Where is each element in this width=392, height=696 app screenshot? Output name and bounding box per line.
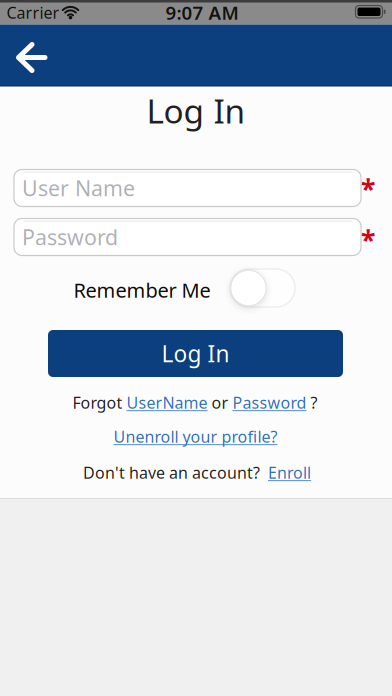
button[interactable]	[230, 269, 295, 307]
staticText: Log In	[146, 88, 245, 133]
staticText: UserName	[126, 392, 207, 413]
button[interactable]: User Name	[14, 169, 361, 206]
staticText: Unenroll your profile?	[113, 426, 277, 447]
staticText: Password	[22, 223, 118, 251]
button[interactable]: Password	[232, 392, 306, 413]
staticText: Remember Me	[73, 277, 210, 303]
staticText: *	[361, 171, 375, 207]
staticText: *	[361, 222, 375, 258]
staticText: Forgot	[72, 392, 126, 413]
button[interactable]: Enroll	[268, 462, 311, 483]
button[interactable]: Unenroll your profile?	[113, 426, 277, 447]
staticText: Password	[232, 392, 306, 413]
staticText: ?	[306, 392, 317, 413]
staticText: Enroll	[268, 462, 311, 483]
button[interactable]: UserName	[126, 392, 207, 413]
button[interactable]: Password	[14, 218, 361, 255]
staticText: 9:07 AM	[165, 0, 238, 25]
staticText: Log In	[161, 338, 229, 368]
staticText: User Name	[22, 174, 135, 202]
staticText: or	[207, 392, 232, 413]
button[interactable]	[1, 35, 45, 75]
staticText: Carrier	[6, 2, 59, 23]
button[interactable]: Log In	[48, 330, 343, 377]
staticText: Don't have an account?	[83, 462, 268, 483]
